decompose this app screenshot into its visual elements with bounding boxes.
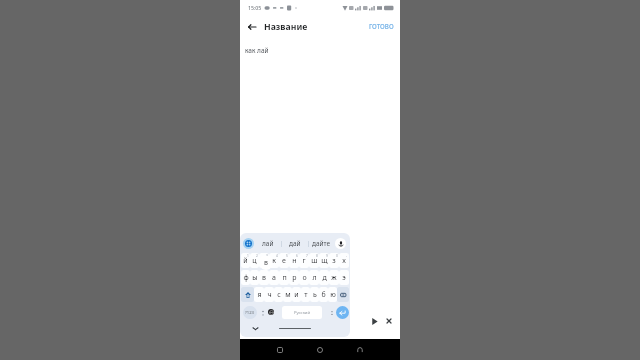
button[interactable]: -	[339, 253, 349, 268]
button[interactable]: п	[279, 270, 289, 285]
button[interactable]: и	[292, 287, 301, 302]
button[interactable]: 6	[289, 253, 299, 268]
staticText: б	[321, 290, 326, 300]
staticText: ш	[311, 256, 318, 266]
button[interactable]: Play	[368, 315, 380, 327]
staticText: э	[342, 273, 346, 283]
staticText: щ	[321, 256, 328, 266]
button[interactable]: в	[259, 270, 269, 285]
staticText: 6	[296, 254, 298, 258]
staticText: о	[302, 273, 307, 283]
button[interactable]: э	[339, 270, 349, 285]
button[interactable]: о	[299, 270, 309, 285]
staticText: ю	[330, 290, 336, 300]
button[interactable]: ф	[241, 270, 250, 285]
button[interactable]: 3	[259, 253, 269, 268]
button[interactable]: 9	[319, 253, 329, 268]
button[interactable]: 2	[250, 253, 259, 268]
staticText: а	[272, 273, 276, 283]
button[interactable]: ю	[328, 287, 337, 302]
button[interactable]	[337, 287, 349, 302]
staticText: ь	[313, 290, 317, 300]
staticText: 9	[326, 254, 328, 258]
button[interactable]: с	[274, 287, 283, 302]
staticText: с	[277, 290, 281, 300]
staticText: в	[264, 258, 268, 268]
button[interactable]: дайте	[308, 235, 335, 252]
button[interactable]: 8	[309, 253, 319, 268]
staticText: дайте	[312, 239, 331, 248]
button[interactable]: Close	[383, 315, 395, 327]
staticText: л	[312, 273, 317, 283]
staticText: Название	[264, 21, 308, 33]
staticText: в	[262, 273, 266, 283]
staticText: ч	[267, 290, 272, 300]
staticText: 4	[276, 254, 278, 258]
staticText: ф	[243, 273, 249, 283]
button[interactable]: Home	[312, 342, 328, 358]
staticText: ГОТОВО	[369, 22, 394, 30]
staticText: р	[292, 273, 297, 283]
staticText: х	[342, 256, 346, 266]
button[interactable]: б	[319, 287, 328, 302]
button[interactable]: м	[283, 287, 292, 302]
staticText: 8	[316, 254, 318, 258]
button[interactable]: Emoji keyboard	[243, 238, 254, 249]
button[interactable]: Русский	[282, 306, 322, 319]
button[interactable]: 4	[269, 253, 279, 268]
staticText: 3	[266, 254, 268, 258]
staticText: 5	[286, 254, 288, 258]
button[interactable]: Voice input	[335, 238, 346, 249]
button[interactable]: 1	[241, 253, 250, 268]
button[interactable]: лай	[254, 235, 281, 252]
staticText: 15:05	[248, 4, 262, 11]
button[interactable]: Back	[352, 342, 368, 358]
button[interactable]: 0	[329, 253, 339, 268]
staticText: 2	[256, 254, 258, 258]
staticText: лай	[262, 239, 274, 248]
button[interactable]: л	[309, 270, 319, 285]
staticText: ж	[331, 273, 337, 283]
button[interactable]: 5	[279, 253, 289, 268]
button[interactable]: Change language	[268, 309, 274, 315]
button[interactable]: д	[319, 270, 329, 285]
staticText: е	[282, 256, 286, 266]
staticText: Русский	[294, 310, 311, 316]
button[interactable]: а	[269, 270, 279, 285]
staticText: 0	[336, 254, 338, 258]
staticText: м	[285, 290, 291, 300]
staticText: ы	[252, 273, 258, 283]
button[interactable]: ч	[264, 287, 274, 302]
button[interactable]: Hide keyboard	[249, 322, 261, 334]
button[interactable]: ГОТОВО	[363, 18, 400, 34]
button[interactable]: ы	[250, 270, 259, 285]
staticText: г	[302, 256, 306, 266]
staticText: ?123	[245, 310, 255, 316]
staticText: й	[243, 256, 248, 266]
button[interactable]: Enter	[336, 306, 349, 319]
staticText: т	[304, 290, 308, 300]
button[interactable]: дай	[281, 235, 308, 252]
staticText: з	[332, 256, 336, 266]
staticText: и	[294, 290, 299, 300]
staticText: 1	[247, 254, 249, 258]
button[interactable]: ь	[310, 287, 319, 302]
button[interactable]: Settings	[257, 306, 268, 319]
button[interactable]: ж	[329, 270, 339, 285]
button[interactable]: т	[301, 287, 310, 302]
button[interactable]: р	[289, 270, 299, 285]
staticText: 7	[306, 254, 308, 258]
staticText: я	[257, 290, 262, 300]
button[interactable]	[241, 287, 254, 302]
button[interactable]: ?123	[243, 306, 257, 319]
staticText: как лай	[245, 46, 269, 55]
button[interactable]: я	[254, 287, 264, 302]
staticText: у	[262, 256, 266, 266]
button[interactable]: 7	[299, 253, 309, 268]
button[interactable]: Back	[242, 17, 262, 37]
button[interactable]: Period	[327, 306, 336, 319]
staticText: -	[346, 254, 348, 258]
staticText: дай	[289, 239, 301, 248]
button[interactable]: Recents	[272, 342, 288, 358]
staticText: п	[282, 273, 287, 283]
